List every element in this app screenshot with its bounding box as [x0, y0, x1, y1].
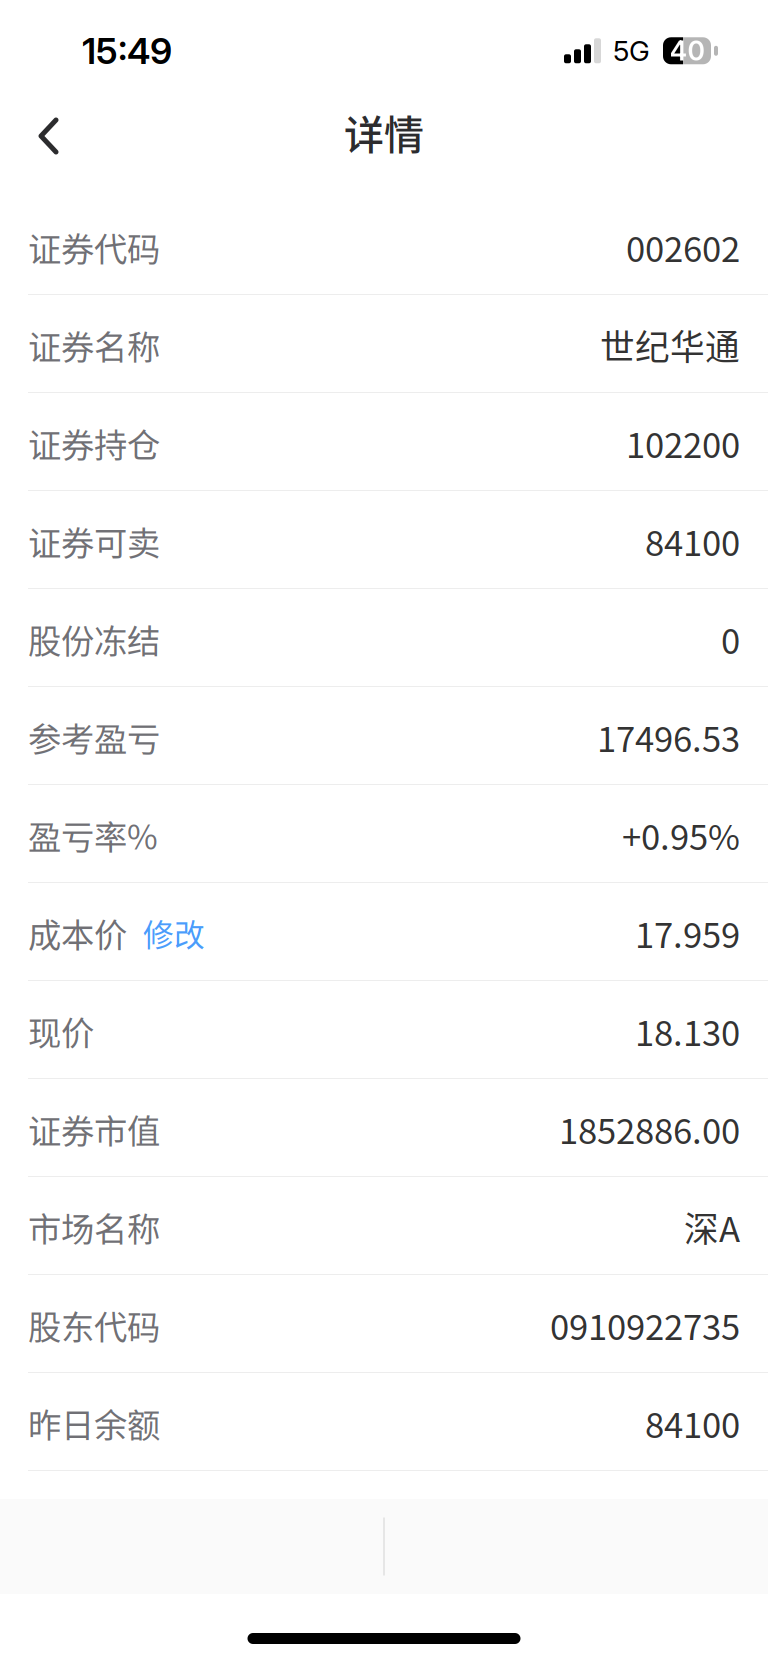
staticText: 002602: [626, 222, 740, 272]
button[interactable]: 证券持仓: [0, 393, 768, 490]
staticText: 深A: [684, 1202, 740, 1252]
staticText: 15:49: [82, 29, 172, 73]
staticText: 成本价: [28, 909, 127, 957]
staticText: 昨日余额: [28, 1399, 160, 1447]
button[interactable]: 成本价: [0, 883, 768, 980]
staticText: 0910922735: [550, 1300, 740, 1350]
staticText: 证券代码: [28, 223, 160, 271]
staticText: 102200: [626, 418, 740, 468]
staticText: 股东代码: [28, 1301, 160, 1349]
staticText: 40: [669, 35, 704, 67]
button[interactable]: 市场名称: [0, 1177, 768, 1274]
button[interactable]: 证券可卖: [0, 491, 768, 588]
button[interactable]: 盈亏率%: [0, 785, 768, 882]
staticText: 84100: [645, 516, 740, 566]
staticText: 证券市值: [28, 1105, 160, 1153]
staticText: 盈亏率%: [28, 811, 158, 859]
staticText: 现价: [28, 1007, 94, 1055]
staticText: 证券可卖: [28, 517, 160, 565]
staticText: 证券名称: [28, 321, 160, 369]
button[interactable]: 参考盈亏: [0, 687, 768, 784]
staticText: 股份冻结: [28, 615, 160, 663]
button[interactable]: 股东代码: [0, 1275, 768, 1372]
staticText: 参考盈亏: [28, 713, 160, 761]
button[interactable]: 证券名称: [0, 295, 768, 392]
staticText: 证券持仓: [28, 419, 160, 467]
staticText: 5G: [613, 34, 650, 68]
button[interactable]: 股份冻结: [0, 589, 768, 686]
staticText: +0.95%: [622, 810, 740, 860]
staticText: 市场名称: [28, 1203, 160, 1251]
staticText: 详情: [344, 103, 424, 161]
button[interactable]: 修改: [127, 911, 205, 955]
staticText: 84100: [645, 1398, 740, 1448]
staticText: 17.959: [635, 908, 740, 958]
staticText: 0: [721, 614, 740, 664]
button[interactable]: 证券代码: [0, 197, 768, 294]
button[interactable]: 昨日余额: [0, 1373, 768, 1470]
button[interactable]: 现价: [0, 981, 768, 1078]
button[interactable]: 证券市值: [0, 1079, 768, 1176]
button[interactable]: Back: [0, 85, 96, 185]
staticText: 世纪华通: [600, 320, 740, 370]
staticText: 1852886.00: [559, 1104, 740, 1154]
staticText: 修改: [143, 911, 205, 955]
staticText: 17496.53: [597, 712, 740, 762]
staticText: 18.130: [635, 1006, 740, 1056]
